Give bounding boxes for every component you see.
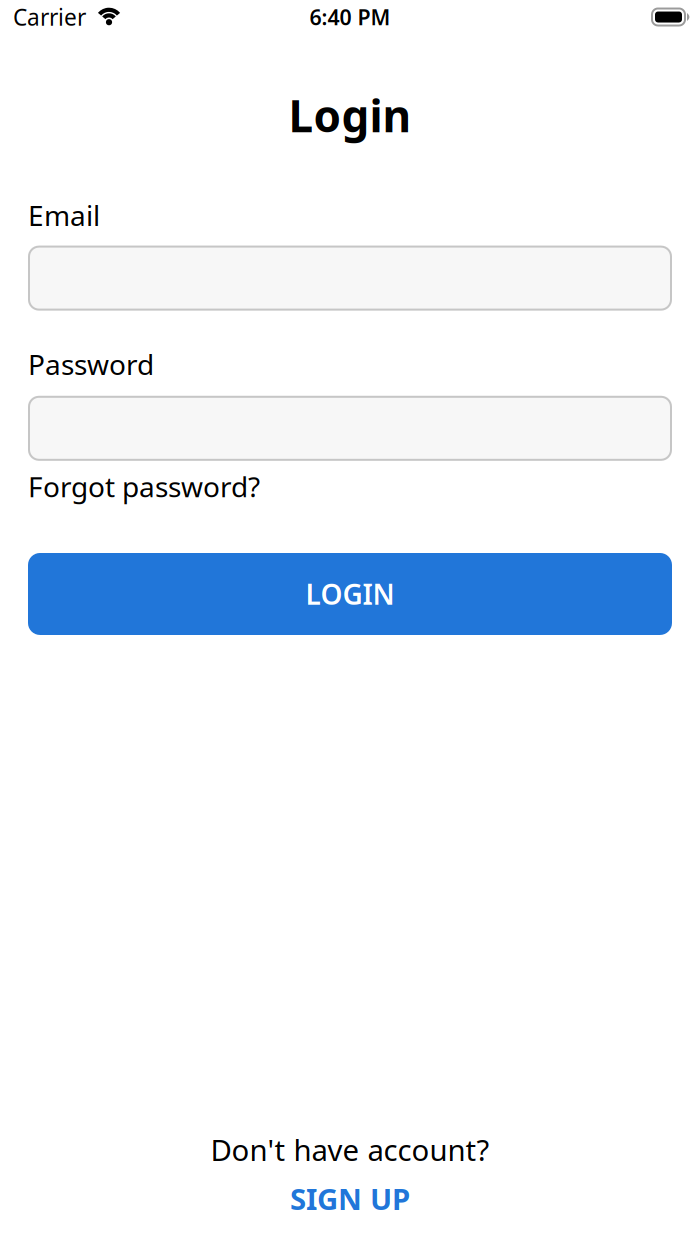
button[interactable]: SIGN UP [290,1179,410,1218]
button[interactable]: Forgot password? [28,468,260,505]
staticText: LOGIN [305,575,394,613]
staticText: SIGN UP [290,1179,410,1218]
staticText: Carrier [13,2,86,32]
staticText: Email [28,196,100,234]
staticText: Login [288,86,411,144]
staticText: 6:40 PM [309,3,390,31]
staticText: Password [28,346,154,383]
button[interactable]: LOGIN [28,553,672,635]
staticText: Don't have account? [210,1130,489,1169]
staticText: Forgot password? [28,468,260,505]
